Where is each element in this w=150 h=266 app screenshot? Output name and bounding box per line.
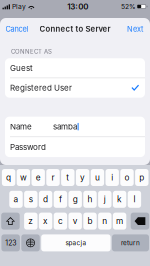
staticText: a	[13, 194, 18, 204]
button[interactable]: Delete	[131, 213, 149, 230]
staticText: Registered User	[10, 83, 72, 93]
staticText: m	[116, 216, 123, 226]
staticText: Connect to Server	[39, 24, 110, 34]
staticText: n	[102, 216, 107, 226]
staticText: e	[36, 172, 41, 182]
staticText: h	[87, 194, 92, 204]
button[interactable]: w	[17, 169, 30, 186]
button[interactable]: h	[83, 191, 97, 208]
button[interactable]: Next	[123, 21, 150, 37]
staticText: s	[29, 194, 33, 204]
button[interactable]: j	[98, 191, 111, 208]
button[interactable]: a	[9, 191, 23, 208]
button[interactable]: 123	[1, 234, 20, 251]
button[interactable]: Password	[5, 137, 145, 157]
button[interactable]: r	[46, 169, 60, 186]
button[interactable]: v	[68, 213, 82, 230]
button[interactable]: n	[98, 213, 111, 230]
staticText: w	[20, 172, 27, 182]
button[interactable]: o	[120, 169, 134, 186]
staticText: spacja	[65, 239, 86, 247]
staticText: g	[73, 194, 78, 204]
staticText: k	[117, 194, 122, 204]
staticText: v	[73, 216, 78, 226]
staticText: o	[124, 172, 129, 182]
staticText: q	[6, 172, 11, 182]
button[interactable]: l	[128, 191, 141, 208]
button[interactable]: return	[112, 234, 149, 251]
button[interactable]: spacja	[41, 234, 111, 251]
staticText: return	[121, 239, 140, 247]
staticText: 52%	[121, 2, 136, 11]
staticText: f	[59, 194, 62, 204]
staticText: 13:00	[67, 2, 88, 11]
button[interactable]: m	[113, 213, 126, 230]
button[interactable]: z	[24, 213, 37, 230]
staticText: p	[139, 172, 144, 182]
button[interactable]: Next keyboard	[21, 234, 40, 251]
staticText: Name	[10, 122, 32, 131]
button[interactable]: x	[39, 213, 52, 230]
staticText: samba	[53, 122, 77, 131]
button[interactable]: d	[39, 191, 52, 208]
button[interactable]: e	[31, 169, 45, 186]
button[interactable]: t	[61, 169, 74, 186]
staticText: Cancel	[5, 25, 28, 33]
button[interactable]: u	[91, 169, 104, 186]
staticText: Next	[127, 25, 143, 33]
staticText: z	[28, 216, 33, 226]
staticText: Play	[12, 2, 26, 11]
staticText: Password	[10, 142, 46, 152]
staticText: u	[95, 172, 100, 182]
staticText: r	[51, 172, 54, 182]
staticText: i	[111, 172, 113, 182]
button[interactable]: Shift	[1, 213, 20, 230]
staticText: d	[43, 194, 48, 204]
button[interactable]: b	[83, 213, 97, 230]
staticText: b	[87, 216, 92, 226]
staticText: Guest	[10, 63, 33, 73]
staticText: 123	[5, 239, 16, 247]
button[interactable]: q	[2, 169, 15, 186]
button[interactable]: s	[24, 191, 37, 208]
staticText: l	[133, 194, 135, 204]
button[interactable]: Cancel	[0, 21, 32, 37]
button[interactable]: f	[54, 191, 67, 208]
button[interactable]: i	[105, 169, 119, 186]
button[interactable]: g	[68, 191, 82, 208]
button[interactable]: Guest	[5, 58, 145, 78]
staticText: x	[43, 216, 48, 226]
staticText: c	[58, 216, 63, 226]
button[interactable]: p	[135, 169, 148, 186]
staticText: y	[80, 172, 85, 182]
staticText: CONNECT AS	[11, 48, 52, 55]
button[interactable]: k	[113, 191, 126, 208]
button[interactable]: y	[76, 169, 89, 186]
staticText: j	[104, 194, 106, 204]
button[interactable]: Name	[5, 117, 145, 137]
button[interactable]: c	[54, 213, 67, 230]
button[interactable]: Registered User	[5, 78, 145, 98]
staticText: t	[66, 172, 69, 182]
